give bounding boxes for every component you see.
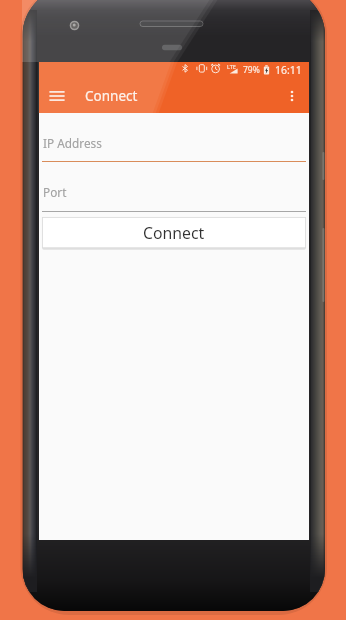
staticText: 79% xyxy=(243,64,260,76)
staticText: Port xyxy=(43,184,67,200)
staticText: LTE xyxy=(227,63,236,70)
staticText: Connect xyxy=(85,87,138,105)
button[interactable]: More options xyxy=(284,86,300,106)
staticText: IP Address xyxy=(43,135,102,151)
button[interactable]: Connect xyxy=(42,217,306,250)
button[interactable]: Open navigation menu xyxy=(49,86,65,106)
staticText: Connect xyxy=(143,222,205,244)
staticText: 16:11 xyxy=(275,63,302,77)
